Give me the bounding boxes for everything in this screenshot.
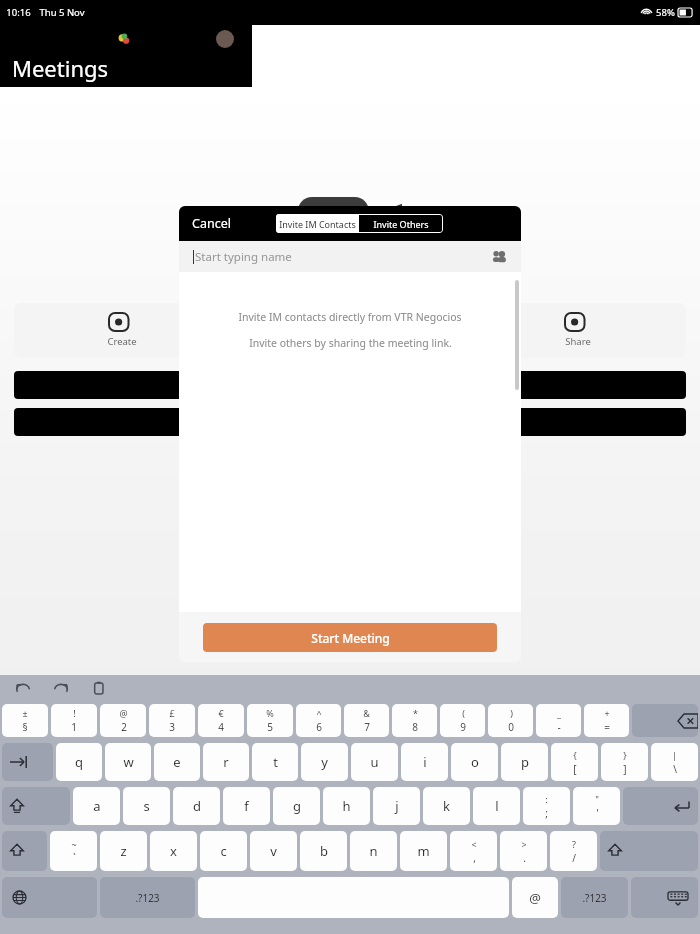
- button[interactable]: *: [392, 704, 437, 737]
- staticText: Meetings: [602, 913, 640, 925]
- button[interactable]: c: [200, 831, 247, 871]
- button[interactable]: |: [651, 743, 698, 781]
- button[interactable]: v: [250, 831, 297, 871]
- button[interactable]: >: [500, 831, 547, 871]
- button[interactable]: @: [100, 704, 146, 737]
- button[interactable]: h: [323, 787, 370, 825]
- button[interactable]: Hide keyboard: [631, 877, 698, 918]
- button[interactable]: ±: [2, 704, 48, 737]
- button[interactable]: w: [105, 743, 151, 781]
- staticText: 3: [169, 720, 175, 734]
- button[interactable]: n: [350, 831, 397, 871]
- staticText: §: [22, 720, 28, 734]
- button[interactable]: €: [198, 704, 244, 737]
- button[interactable]: r: [203, 743, 249, 781]
- button[interactable]: t: [252, 743, 298, 781]
- button[interactable]: .?123: [100, 877, 195, 918]
- staticText: @: [119, 707, 128, 719]
- button[interactable]: !: [51, 704, 97, 737]
- button[interactable]: e: [154, 743, 200, 781]
- button[interactable]: :: [523, 787, 570, 825]
- button[interactable]: j: [373, 787, 420, 825]
- button[interactable]: k: [423, 787, 470, 825]
- button[interactable]: a: [73, 787, 120, 825]
- staticText: 5: [267, 720, 273, 734]
- button[interactable]: m: [400, 831, 447, 871]
- button[interactable]: Backspace: [632, 704, 698, 737]
- button[interactable]: b: [300, 831, 347, 871]
- button[interactable]: Join a Meeting: [14, 371, 686, 399]
- button[interactable]: Invite Others: [359, 214, 443, 233]
- staticText: s: [143, 797, 150, 815]
- button[interactable]: Shift: [2, 831, 47, 871]
- button[interactable]: x: [150, 831, 197, 871]
- button[interactable]: {: [551, 743, 598, 781]
- button[interactable]: Upcoming Meetings: [14, 408, 686, 436]
- button[interactable]: @: [512, 877, 558, 918]
- button[interactable]: Contacts: [0, 904, 175, 934]
- staticText: t: [273, 753, 278, 771]
- button[interactable]: Share: [470, 303, 686, 358]
- staticText: 6: [316, 720, 322, 734]
- staticText: x: [170, 842, 177, 860]
- button[interactable]: Tab: [2, 743, 53, 781]
- button[interactable]: %: [247, 704, 293, 737]
- button[interactable]: Contacts: [491, 249, 507, 265]
- button[interactable]: &: [344, 704, 389, 737]
- staticText: m: [417, 842, 430, 860]
- button[interactable]: ?: [550, 831, 597, 871]
- button[interactable]: <: [450, 831, 497, 871]
- button[interactable]: Profile: [216, 30, 234, 48]
- staticText: n: [369, 842, 378, 860]
- staticText: y: [321, 753, 328, 771]
- button[interactable]: Paste: [90, 679, 108, 697]
- staticText: ): [510, 707, 513, 719]
- button[interactable]: p: [501, 743, 548, 781]
- button[interactable]: ": [573, 787, 620, 825]
- button[interactable]: +: [584, 704, 629, 737]
- staticText: 58%: [656, 6, 675, 19]
- button[interactable]: o: [451, 743, 498, 781]
- button[interactable]: y: [301, 743, 348, 781]
- button[interactable]: g: [273, 787, 320, 825]
- button[interactable]: }: [601, 743, 648, 781]
- button[interactable]: _: [536, 704, 581, 737]
- button[interactable]: u: [351, 743, 398, 781]
- button[interactable]: £: [149, 704, 195, 737]
- button[interactable]: Undo: [14, 679, 32, 697]
- button[interactable]: Start Meeting: [203, 623, 497, 652]
- staticText: ;: [545, 806, 548, 820]
- button[interactable]: Phone: [175, 904, 350, 934]
- staticText: p: [521, 753, 529, 771]
- button[interactable]: .?123: [561, 877, 628, 918]
- button[interactable]: ~: [50, 831, 97, 871]
- staticText: h: [342, 797, 351, 815]
- button[interactable]: f: [223, 787, 270, 825]
- button[interactable]: ^: [296, 704, 341, 737]
- button[interactable]: s: [123, 787, 170, 825]
- button[interactable]: z: [100, 831, 147, 871]
- button[interactable]: Meetings: [525, 904, 700, 934]
- button[interactable]: Chat: [350, 904, 525, 934]
- button[interactable]: i: [401, 743, 448, 781]
- button[interactable]: Shift: [600, 831, 698, 871]
- staticText: -: [557, 720, 561, 734]
- button[interactable]: ): [488, 704, 533, 737]
- button[interactable]: Redo: [52, 679, 70, 697]
- button[interactable]: Schedule: [242, 303, 458, 358]
- button[interactable]: q: [56, 743, 102, 781]
- staticText: 10:16: [6, 6, 31, 19]
- button[interactable]: Invite IM Contacts: [276, 214, 359, 233]
- button[interactable]: Create: [14, 303, 230, 358]
- button[interactable]: Shift: [2, 787, 70, 825]
- button[interactable]: (: [440, 704, 485, 737]
- button[interactable]: d: [173, 787, 220, 825]
- button[interactable]: l: [473, 787, 520, 825]
- button[interactable]: Cancel: [192, 215, 231, 232]
- button[interactable]: Return: [623, 787, 698, 825]
- button[interactable]: Change keyboard: [2, 877, 97, 918]
- staticText: u: [370, 753, 379, 771]
